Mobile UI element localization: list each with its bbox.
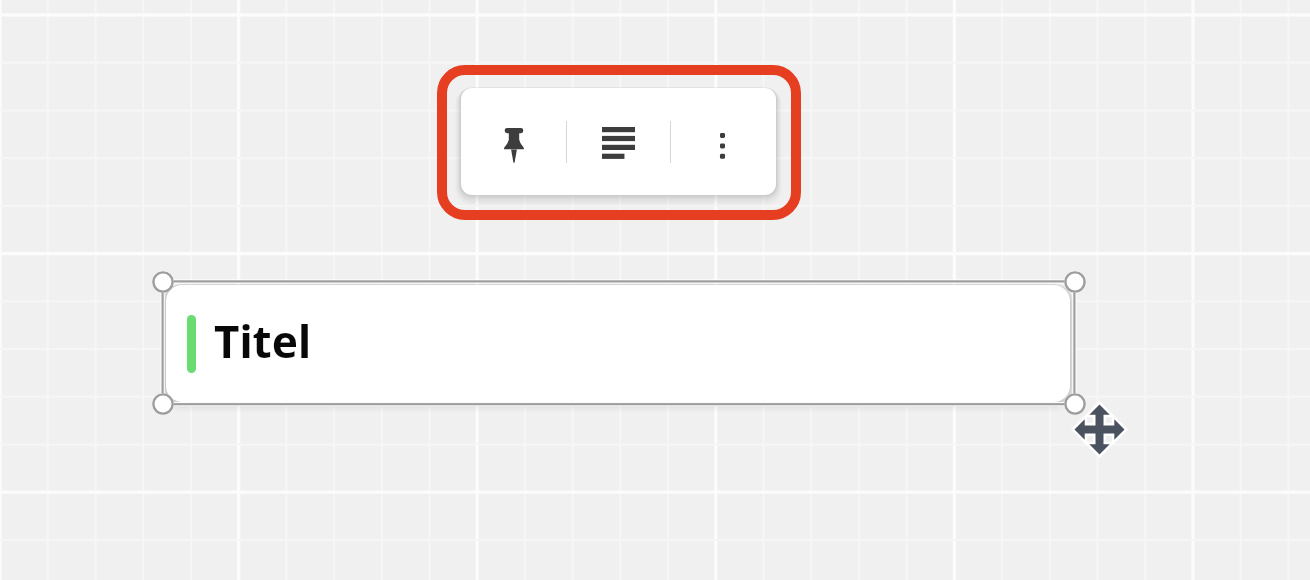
- button[interactable]: Text alignment: [567, 88, 670, 195]
- staticText: Titel: [214, 311, 312, 371]
- button[interactable]: Pin: [461, 88, 566, 195]
- button[interactable]: Resize top left: [152, 271, 174, 293]
- button[interactable]: More options: [671, 88, 774, 195]
- button[interactable]: Resize bottom right: [1064, 393, 1086, 415]
- button[interactable]: Resize bottom left: [152, 393, 174, 415]
- button[interactable]: Move: [1069, 399, 1130, 460]
- button[interactable]: Resize top right: [1064, 271, 1086, 293]
- button[interactable]: Titel: [166, 285, 1070, 402]
